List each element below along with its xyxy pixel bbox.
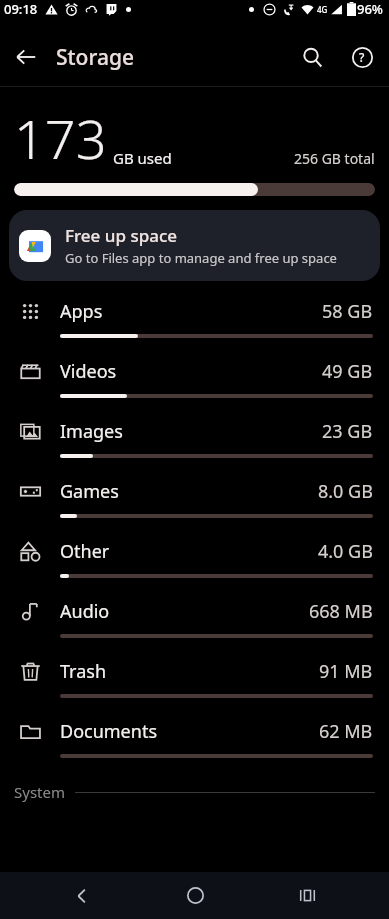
button[interactable]: Videos [0, 353, 389, 413]
staticText: Documents [60, 719, 158, 744]
staticText: 91 MB [319, 659, 373, 684]
button[interactable]: Search [287, 32, 337, 82]
staticText: 49 GB [322, 359, 373, 384]
staticText: 668 MB [309, 599, 373, 624]
staticText: Other [60, 539, 110, 564]
staticText: Free up space [65, 224, 178, 247]
button[interactable]: Back [52, 872, 112, 919]
staticText: 4.0 GB [318, 539, 373, 564]
button[interactable]: Recents [277, 872, 337, 919]
button[interactable]: System [0, 777, 389, 807]
button[interactable]: Documents [0, 713, 389, 773]
staticText: 96% [357, 0, 383, 18]
button[interactable]: Games [0, 473, 389, 533]
button[interactable]: Apps [0, 293, 389, 353]
staticText: 09:18 [4, 0, 38, 18]
staticText: 256 GB total [294, 149, 375, 168]
button[interactable]: Audio [0, 593, 389, 653]
staticText: Videos [60, 359, 117, 384]
staticText: 4G [317, 4, 328, 15]
staticText: 173 [14, 101, 107, 175]
staticText: 23 GB [322, 419, 373, 444]
staticText: Trash [60, 659, 107, 684]
staticText: Audio [60, 599, 110, 624]
staticText: Images [60, 419, 123, 444]
button[interactable]: Trash [0, 653, 389, 713]
button[interactable]: Images [0, 413, 389, 473]
staticText: Go to Files app to manage and free up sp… [65, 249, 337, 267]
staticText: ? [359, 49, 365, 65]
staticText: 58 GB [322, 299, 373, 324]
staticText: Games [60, 479, 119, 504]
button[interactable]: Other [0, 533, 389, 593]
button[interactable]: Home [165, 872, 225, 919]
staticText: 62 MB [319, 719, 373, 744]
staticText: System [14, 782, 65, 802]
button[interactable]: Help [337, 32, 387, 82]
button[interactable]: Back [0, 31, 52, 83]
staticText: GB used [113, 148, 172, 168]
staticText: 8.0 GB [318, 479, 373, 504]
button[interactable]: Free up space [9, 210, 380, 281]
staticText: Storage [56, 43, 134, 72]
staticText: Apps [60, 299, 103, 324]
